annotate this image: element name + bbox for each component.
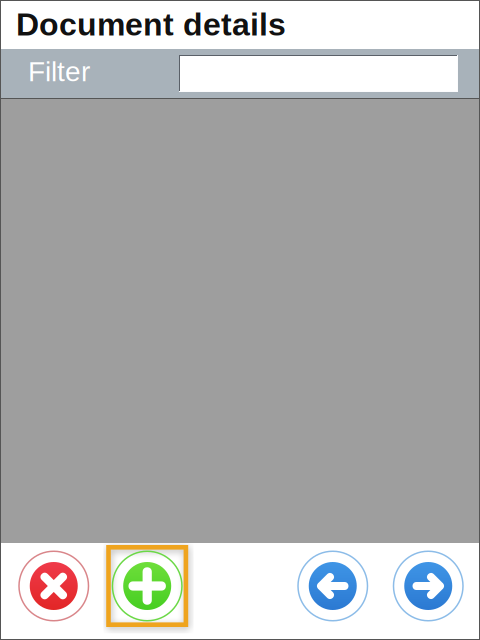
button[interactable]: Previous [298,551,367,621]
staticText: Filter [28,56,90,87]
button[interactable]: Cancel [19,551,88,621]
button[interactable]: Next [393,551,463,621]
staticText: Document details [16,7,286,42]
button[interactable]: Add [112,551,182,621]
button[interactable]: Filter text field [179,55,458,92]
